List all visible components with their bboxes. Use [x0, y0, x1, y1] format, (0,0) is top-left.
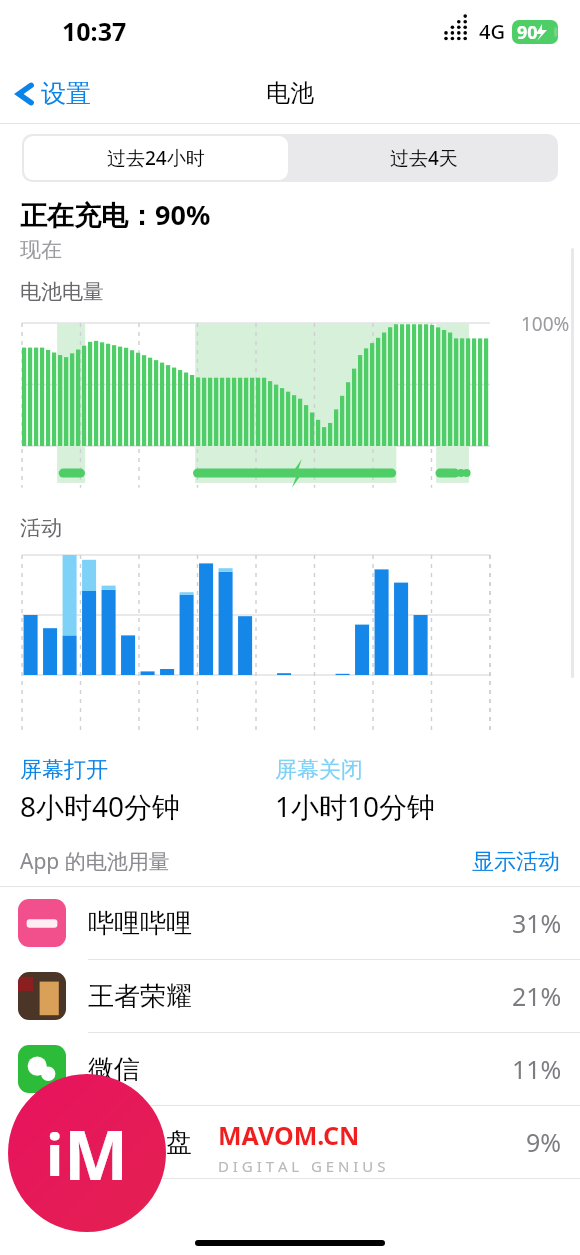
button[interactable]: 王者荣耀 [0, 960, 580, 1032]
staticText: 王者荣耀 [88, 980, 192, 1013]
button[interactable]: 百度网盘 [0, 1106, 580, 1178]
staticText: 11% [512, 1052, 562, 1086]
staticText: 显示活动 [472, 848, 560, 876]
staticText: 1小时10分钟 [275, 787, 436, 825]
button[interactable]: 显示活动 [472, 848, 560, 876]
staticText: 屏幕关闭 [275, 756, 363, 784]
staticText: 90 [517, 20, 538, 44]
staticText: 过去4天 [390, 145, 458, 171]
staticText: 正在充电：90% [20, 196, 211, 233]
button[interactable]: 哔哩哔哩 [0, 887, 580, 959]
staticText: 8小时40分钟 [20, 787, 181, 825]
staticText: M [64, 1107, 129, 1200]
staticText: 百度网盘 [88, 1126, 192, 1159]
button[interactable]: 过去24小时 [24, 136, 288, 180]
staticText: 现在 [20, 237, 62, 263]
staticText: 10:37 [62, 14, 127, 48]
staticText: i [46, 1114, 64, 1193]
staticText: 哔哩哔哩 [88, 907, 192, 940]
staticText: App 的电池用量 [20, 847, 170, 876]
button[interactable]: 设置 [0, 72, 101, 115]
staticText: 电池电量 [20, 279, 104, 305]
staticText: 21% [512, 979, 562, 1013]
staticText: 屏幕打开 [20, 756, 108, 784]
staticText: 活动 [20, 515, 62, 541]
button[interactable]: 微信 [0, 1033, 580, 1105]
staticText: 31% [512, 906, 562, 940]
button[interactable]: 过去4天 [290, 134, 558, 182]
staticText: MAVOM.CN [218, 1118, 360, 1152]
staticText: 过去24小时 [107, 145, 205, 171]
staticText: 电池 [266, 78, 314, 108]
staticText: 9% [526, 1125, 562, 1159]
staticText: 微信 [88, 1053, 140, 1086]
staticText: 100% [521, 311, 570, 337]
staticText: 4G [479, 18, 505, 45]
staticText: D I G I T A L G E N I U S [218, 1156, 386, 1176]
staticText: 设置 [41, 78, 91, 109]
